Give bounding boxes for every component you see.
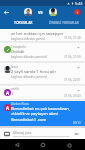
- staticText: baglisov dibraksi yaminid: [11, 75, 47, 79]
- staticText: ve her noktası için savaşıyor: [11, 31, 64, 36]
- button[interactable]: A: [0, 86, 85, 101]
- button[interactable]: More options: [76, 45, 81, 50]
- staticText: 31 Ek, 21:38: [64, 36, 81, 40]
- button[interactable]: More options: [76, 65, 81, 70]
- staticText: Javat: [11, 65, 18, 69]
- staticText: 31 Ek, 23:43: [64, 94, 81, 98]
- staticText: A: [6, 105, 10, 111]
- staticText: YORUMLAR: [14, 20, 33, 25]
- button[interactable]: Live stream: [73, 8, 81, 16]
- button[interactable]: More options: [76, 88, 81, 93]
- staticText: 00:13: [73, 121, 81, 125]
- staticText: nehih: [11, 87, 20, 91]
- staticText: A: [6, 90, 10, 96]
- button[interactable]: Cevaplarfx: [0, 43, 85, 63]
- button[interactable]: YORUMLAR: [0, 18, 42, 29]
- staticText: baglama dibraksi yamid: [11, 37, 45, 41]
- staticText: baglisov dibraksi yaminid: [11, 55, 47, 59]
- staticText: Cevaplarfx: [11, 45, 26, 49]
- staticText: Mesaj yaz: [13, 130, 32, 135]
- staticText: VS: [38, 10, 43, 15]
- button[interactable]: Back: [12, 140, 22, 150]
- button[interactable]: Recent apps: [64, 140, 74, 150]
- staticText: Atakan Nura: [11, 102, 29, 106]
- button[interactable]: Home: [38, 140, 48, 150]
- button[interactable]: A: [0, 101, 85, 126]
- button[interactable]: ÖNEMLİ YORUMLAR: [42, 18, 85, 29]
- staticText: Ovthák: [11, 49, 25, 54]
- staticText: 5:43: [75, 1, 83, 6]
- button[interactable]: Back: [2, 8, 11, 17]
- staticText: 2 sayfi sarola 1 hocu alir: [11, 69, 57, 74]
- button[interactable]: Javat: [0, 63, 85, 86]
- staticText: Bonusfixbot en çok kazandıran, etkinlik …: [11, 106, 82, 123]
- staticText: 31 Ek, 21:50: [64, 55, 81, 59]
- staticText: 1: [11, 91, 14, 96]
- button[interactable]: Send: [73, 130, 81, 138]
- button[interactable]: ve her noktası için savaşıyor: [0, 29, 85, 43]
- staticText: 31 Ek, 22:01: [64, 78, 81, 82]
- button[interactable]: Attach image: [3, 130, 10, 137]
- staticText: ÖNEMLİ YORUMLAR: [49, 21, 79, 25]
